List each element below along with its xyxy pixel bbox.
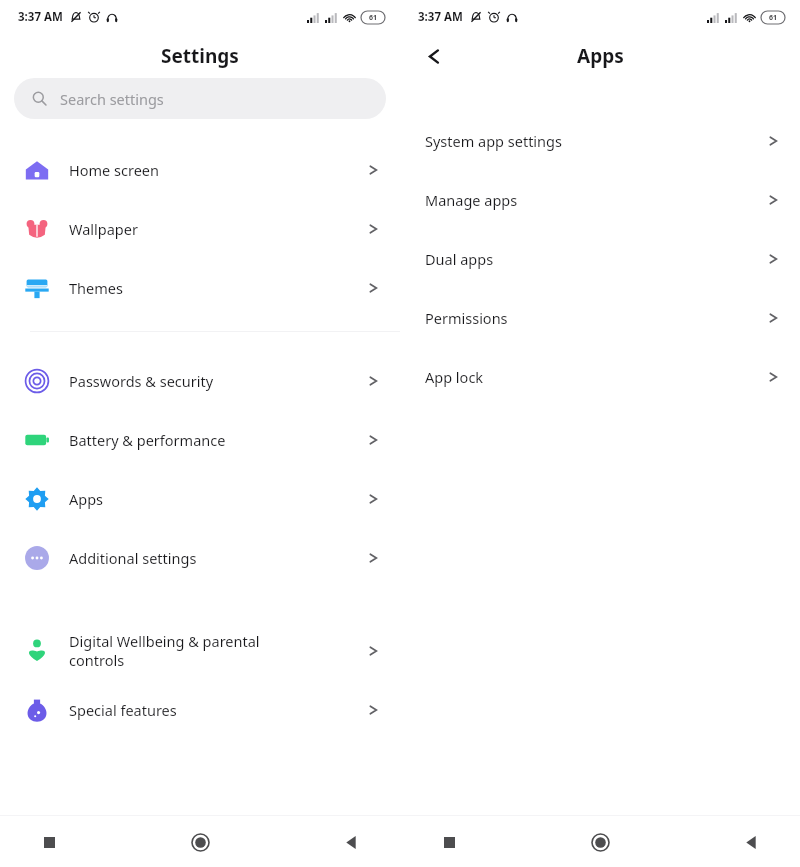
- button[interactable]: Dual apps: [400, 229, 800, 288]
- button[interactable]: Back: [728, 819, 774, 865]
- staticText: 3:37 AM: [18, 9, 63, 25]
- button[interactable]: Permissions: [400, 288, 800, 347]
- staticText: Dual apps: [425, 249, 769, 269]
- button[interactable]: Apps: [0, 469, 400, 528]
- button[interactable]: Passwords & security: [0, 351, 400, 410]
- staticText: Wallpaper: [69, 219, 369, 239]
- staticText: 61: [769, 13, 778, 23]
- staticText: Home screen: [69, 160, 369, 180]
- staticText: Special features: [69, 700, 369, 720]
- staticText: App lock: [425, 367, 769, 387]
- staticText: 61: [369, 13, 378, 23]
- button[interactable]: Manage apps: [400, 170, 800, 229]
- button[interactable]: Wallpaper: [0, 199, 400, 258]
- staticText: Additional settings: [69, 548, 369, 568]
- button[interactable]: System app settings: [400, 111, 800, 170]
- button[interactable]: Search settings: [14, 78, 386, 119]
- button[interactable]: App lock: [400, 347, 800, 406]
- staticText: Settings: [161, 43, 239, 69]
- button[interactable]: Recents: [426, 819, 472, 865]
- button[interactable]: Themes: [0, 258, 400, 317]
- staticText: Permissions: [425, 308, 769, 328]
- staticText: System app settings: [425, 131, 769, 151]
- button[interactable]: Back: [328, 819, 374, 865]
- staticText: Digital Wellbeing & parental controls: [69, 631, 369, 670]
- staticText: Manage apps: [425, 190, 769, 210]
- button[interactable]: Digital Wellbeing & parental controls: [0, 621, 400, 680]
- button[interactable]: Special features: [0, 680, 400, 739]
- staticText: Battery & performance: [69, 430, 369, 450]
- button[interactable]: Recents: [26, 819, 72, 865]
- staticText: 3:37 AM: [418, 9, 463, 25]
- button[interactable]: Back: [416, 38, 452, 74]
- staticText: Passwords & security: [69, 371, 369, 391]
- button[interactable]: Additional settings: [0, 528, 400, 587]
- button[interactable]: Home: [177, 819, 223, 865]
- staticText: Apps: [577, 43, 624, 69]
- staticText: Apps: [69, 489, 369, 509]
- button[interactable]: Home screen: [0, 140, 400, 199]
- staticText: Themes: [69, 278, 369, 298]
- staticText: Search settings: [60, 89, 164, 109]
- button[interactable]: Battery & performance: [0, 410, 400, 469]
- button[interactable]: Home: [577, 819, 623, 865]
